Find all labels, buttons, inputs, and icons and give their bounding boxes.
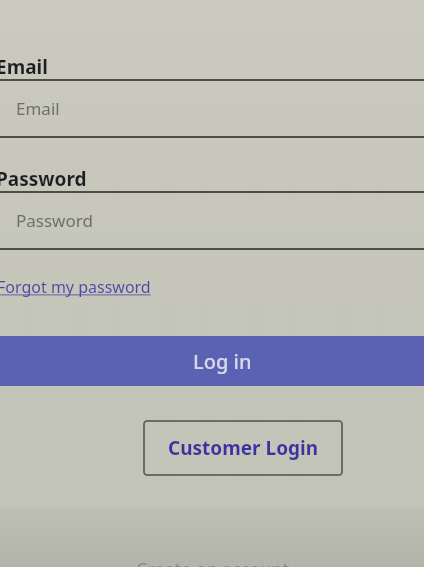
staticText: Password: [0, 166, 87, 192]
button[interactable]: Forgot my password: [0, 274, 152, 300]
button[interactable]: Log in: [0, 336, 424, 386]
button[interactable]: Email: [0, 81, 424, 136]
staticText: Customer Login: [168, 435, 319, 461]
staticText: Password: [16, 209, 93, 232]
button[interactable]: Customer Login: [143, 420, 343, 476]
staticText: Create an account: [136, 557, 289, 567]
button[interactable]: Create an account: [0, 552, 424, 567]
staticText: Log in: [193, 348, 252, 375]
staticText: Email: [0, 54, 48, 80]
staticText: Email: [16, 97, 60, 120]
button[interactable]: Password: [0, 193, 424, 248]
staticText: Forgot my password: [0, 276, 151, 298]
